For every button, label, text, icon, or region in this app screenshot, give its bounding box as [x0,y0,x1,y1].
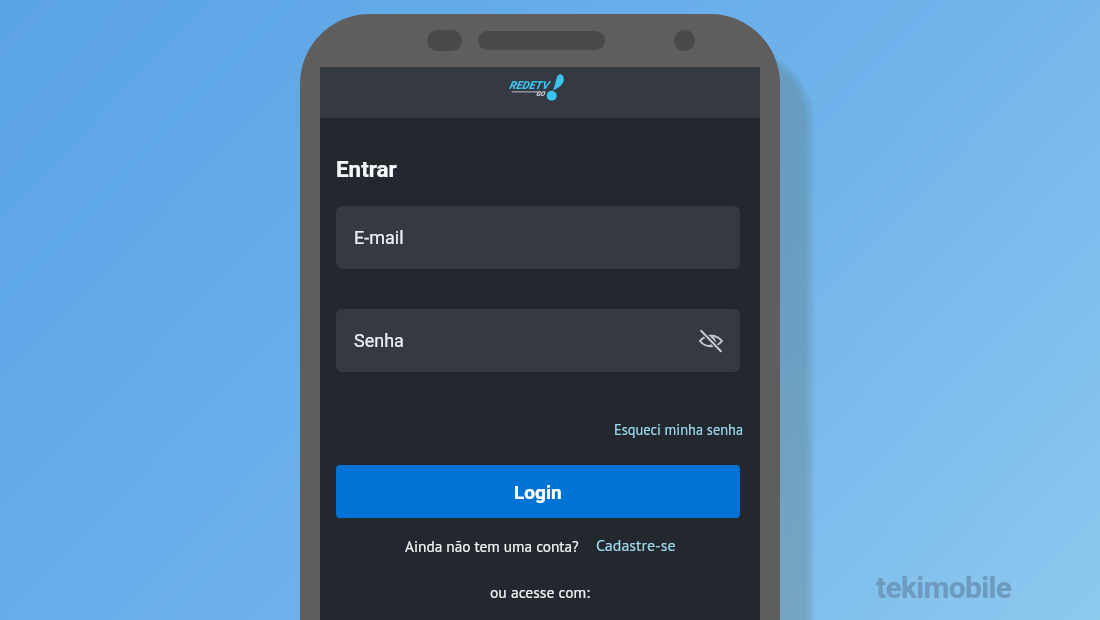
staticText: Senha [354,330,404,351]
staticText: GO [536,90,545,98]
button[interactable]: Login [336,465,740,518]
button[interactable]: Cadastre-se [596,535,676,556]
button[interactable]: E-mail [336,206,740,269]
staticText: Entrar [336,156,397,182]
staticText: Login [514,481,562,503]
button[interactable]: Senha [336,309,740,372]
staticText: Ainda não tem uma conta? [405,536,579,556]
staticText: tekimobile [876,570,1012,605]
staticText: ou acesse com: [490,582,590,602]
staticText: REDETV [509,79,549,92]
button[interactable]: Show password [694,324,728,358]
button[interactable]: Esqueci minha senha [614,420,760,439]
staticText: E-mail [354,227,404,248]
